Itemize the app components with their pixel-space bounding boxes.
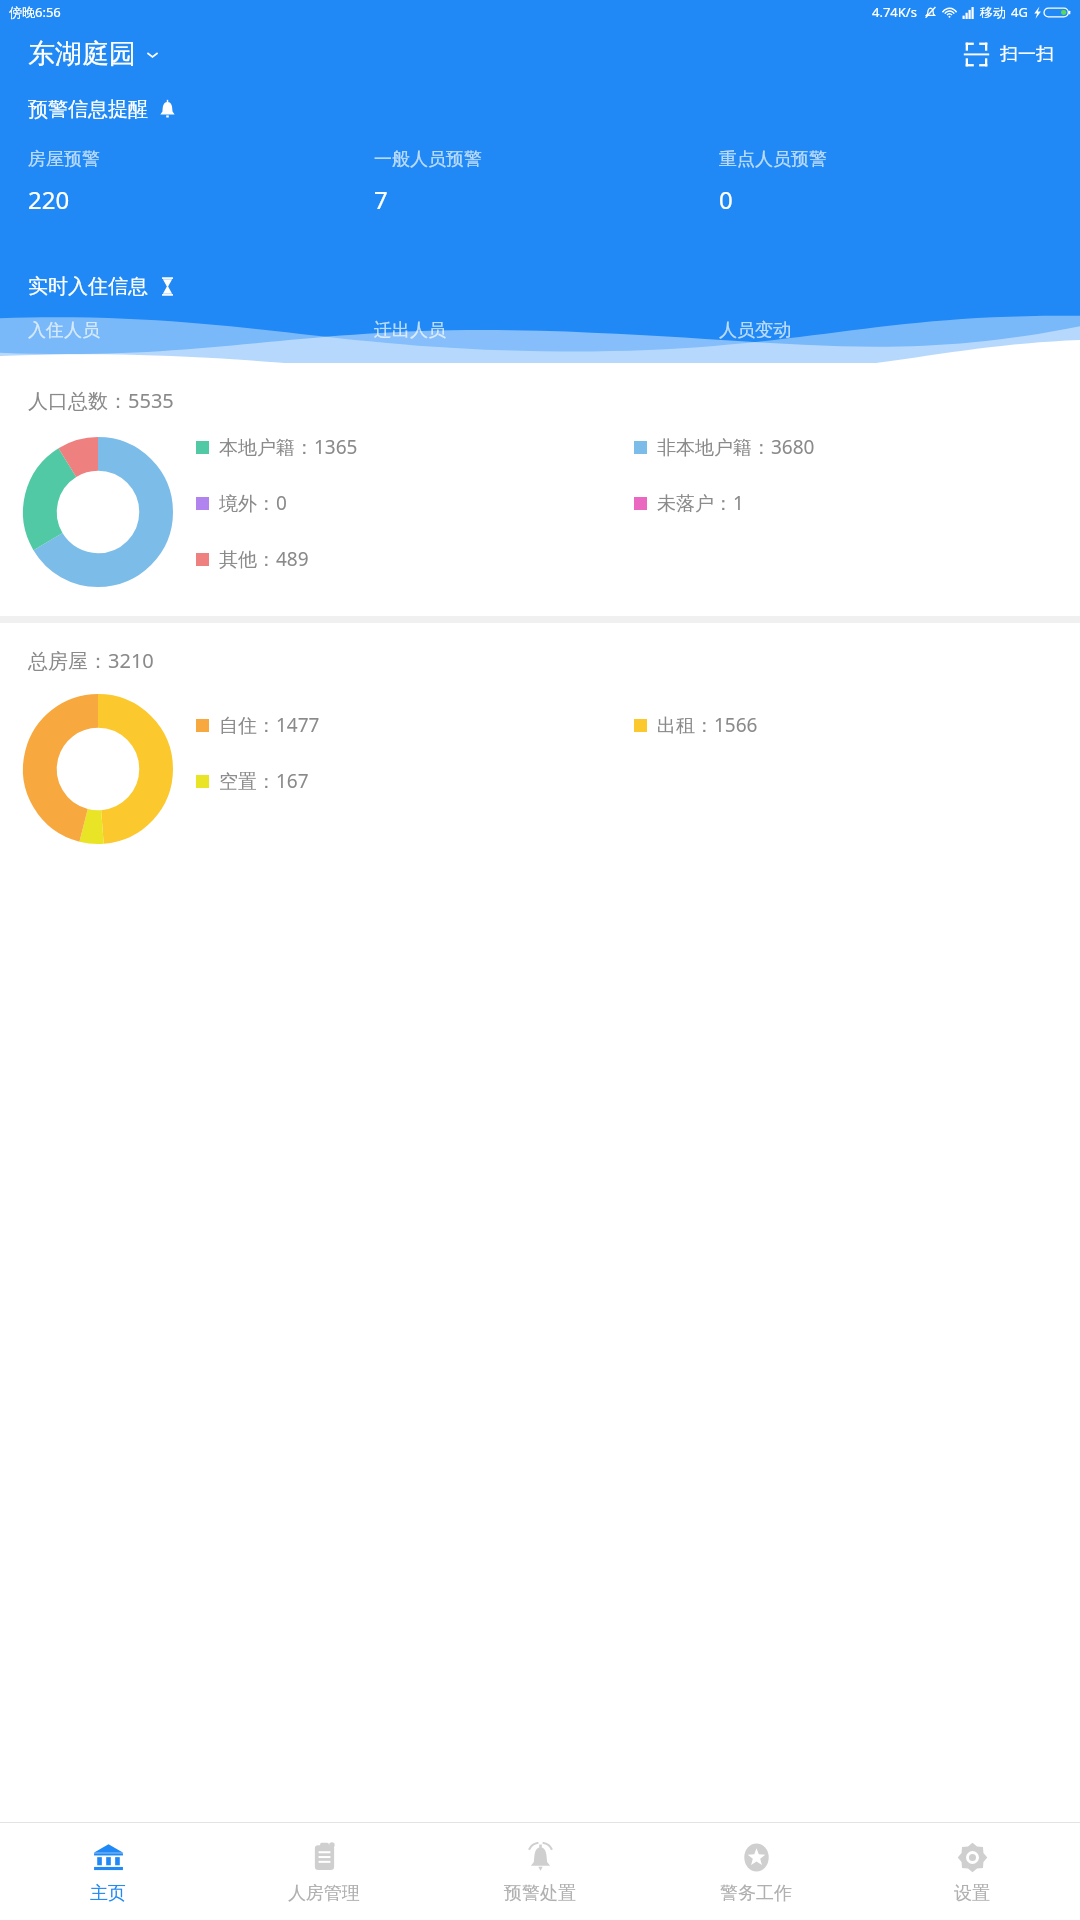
- other: 扫一扫: [963, 41, 990, 68]
- staticText: 人员变动: [719, 319, 791, 342]
- staticText: 4G: [1011, 3, 1028, 21]
- staticText: 傍晚6:56: [9, 3, 61, 21]
- staticText: 总房屋：3210: [28, 647, 154, 674]
- staticText: 人口总数：5535: [28, 387, 174, 414]
- staticText: 警务工作: [720, 1882, 792, 1905]
- button[interactable]: 设置: [864, 1839, 1080, 1905]
- staticText: 其他：489: [219, 546, 309, 572]
- staticText: 7: [374, 183, 388, 216]
- button[interactable]: 自住：1477: [196, 712, 634, 738]
- button[interactable]: 出租：1566: [634, 712, 1072, 738]
- button[interactable]: 空置：167: [196, 768, 634, 794]
- staticText: 自住：1477: [219, 712, 320, 738]
- staticText: 主页: [90, 1882, 126, 1905]
- button[interactable]: 人房管理: [216, 1839, 432, 1905]
- button[interactable]: 境外：0: [196, 490, 634, 516]
- staticText: 人房管理: [288, 1882, 360, 1905]
- staticText: 设置: [954, 1882, 990, 1905]
- staticText: 预警处置: [504, 1882, 576, 1905]
- button[interactable]: 未落户：1: [634, 490, 1072, 516]
- button[interactable]: 一般人员预警: [374, 148, 719, 216]
- staticText: 房屋预警: [28, 148, 100, 171]
- staticText: 预警信息提醒: [28, 97, 148, 122]
- staticText: 未落户：1: [657, 490, 744, 516]
- staticText: 东湖庭园: [28, 37, 136, 71]
- staticText: 入住人员: [28, 319, 100, 342]
- staticText: 0: [719, 183, 733, 216]
- staticText: 出租：1566: [657, 712, 758, 738]
- button[interactable]: 迁出人员: [374, 319, 719, 363]
- button[interactable]: 房屋预警: [28, 148, 374, 216]
- staticText: 空置：167: [219, 768, 309, 794]
- staticText: 境外：0: [219, 490, 287, 516]
- staticText: 16: [28, 354, 56, 363]
- button[interactable]: 其他：489: [196, 546, 634, 572]
- staticText: 迁出人员: [374, 319, 446, 342]
- staticText: 实时入住信息: [28, 274, 148, 299]
- staticText: 一般人员预警: [374, 148, 482, 171]
- button[interactable]: 东湖庭园: [28, 37, 160, 71]
- button[interactable]: 人员变动: [719, 319, 1064, 363]
- button[interactable]: 预警处置: [432, 1839, 648, 1905]
- staticText: 本地户籍：1365: [219, 434, 358, 460]
- staticText: 非本地户籍：3680: [657, 434, 815, 460]
- button[interactable]: 主页: [0, 1839, 216, 1905]
- staticText: 重点人员预警: [719, 148, 827, 171]
- staticText: 4.74K/s: [872, 3, 917, 21]
- button[interactable]: 本地户籍：1365: [196, 434, 634, 460]
- button[interactable]: 非本地户籍：3680: [634, 434, 1072, 460]
- staticText: 移动: [980, 4, 1006, 20]
- button[interactable]: 扫一扫: [963, 41, 1054, 68]
- button[interactable]: 重点人员预警: [719, 148, 1064, 216]
- staticText: 220: [28, 183, 70, 216]
- button[interactable]: 入住人员: [28, 319, 374, 363]
- button[interactable]: 警务工作: [648, 1839, 864, 1905]
- staticText: 扫一扫: [1000, 43, 1054, 66]
